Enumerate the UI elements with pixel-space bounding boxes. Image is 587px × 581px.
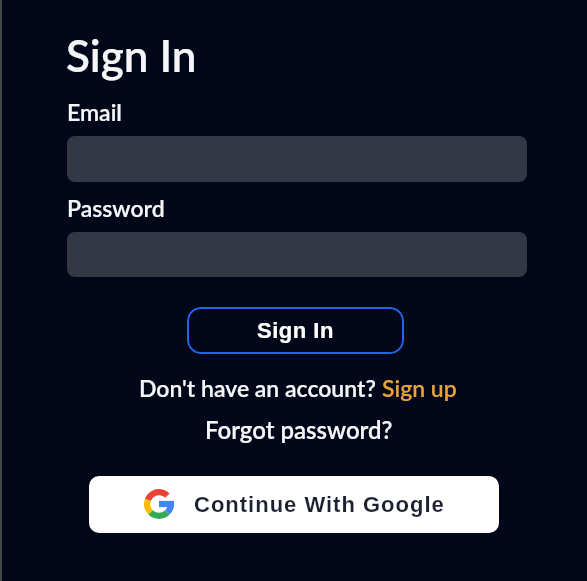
staticText: Sign up [382,374,457,402]
button[interactable]: Forgot password? [205,415,393,444]
staticText: Password [67,194,165,222]
button[interactable]: Don't have an account? [139,374,457,402]
staticText: Continue With Google [194,492,445,517]
button[interactable]: Sign In [187,307,404,354]
staticText: Email [67,98,122,126]
staticText: Don't have an account? [139,374,382,402]
staticText: Sign In [66,29,197,82]
staticText: Sign In [257,318,334,343]
button[interactable]: Continue With Google [89,476,499,533]
